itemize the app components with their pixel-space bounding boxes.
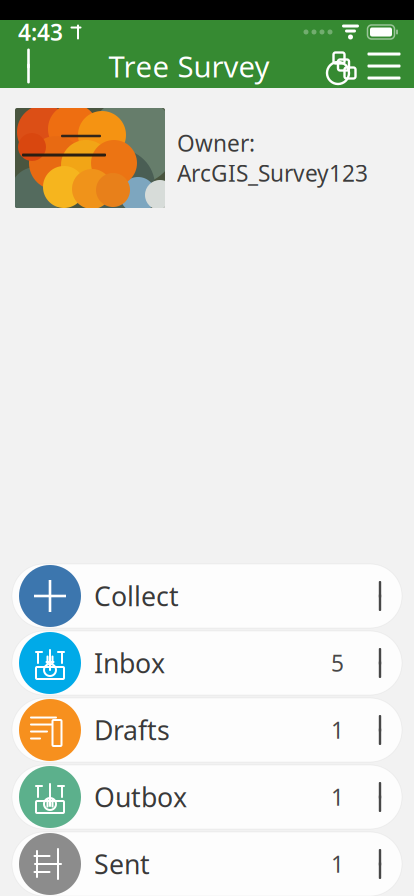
staticText: Sent: [94, 846, 150, 882]
staticText: Tree Survey: [108, 46, 269, 85]
button[interactable]: Drafts: [12, 698, 402, 762]
staticText: 1: [331, 849, 344, 879]
staticText: 4:43: [18, 17, 63, 47]
button[interactable]: Back: [8, 44, 54, 88]
button[interactable]: Outbox: [12, 765, 402, 829]
staticText: Inbox: [94, 645, 165, 681]
staticText: 1: [331, 715, 344, 745]
button[interactable]: Sent: [12, 832, 402, 896]
button[interactable]: Inbox: [12, 631, 402, 695]
button[interactable]: GPS status: [324, 44, 364, 88]
staticText: 5: [331, 648, 344, 678]
staticText: 1: [331, 782, 344, 812]
button[interactable]: Menu: [364, 44, 404, 88]
staticText: Owner: ArcGIS_Survey123: [177, 128, 368, 188]
staticText: Collect: [94, 578, 179, 614]
button[interactable]: Collect: [12, 564, 402, 628]
staticText: Outbox: [94, 779, 187, 815]
staticText: Drafts: [94, 712, 170, 748]
